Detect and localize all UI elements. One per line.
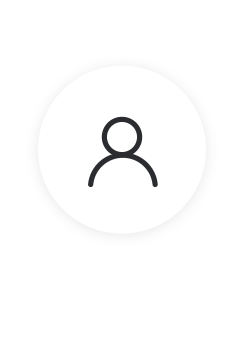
button[interactable]: Account	[38, 66, 206, 234]
